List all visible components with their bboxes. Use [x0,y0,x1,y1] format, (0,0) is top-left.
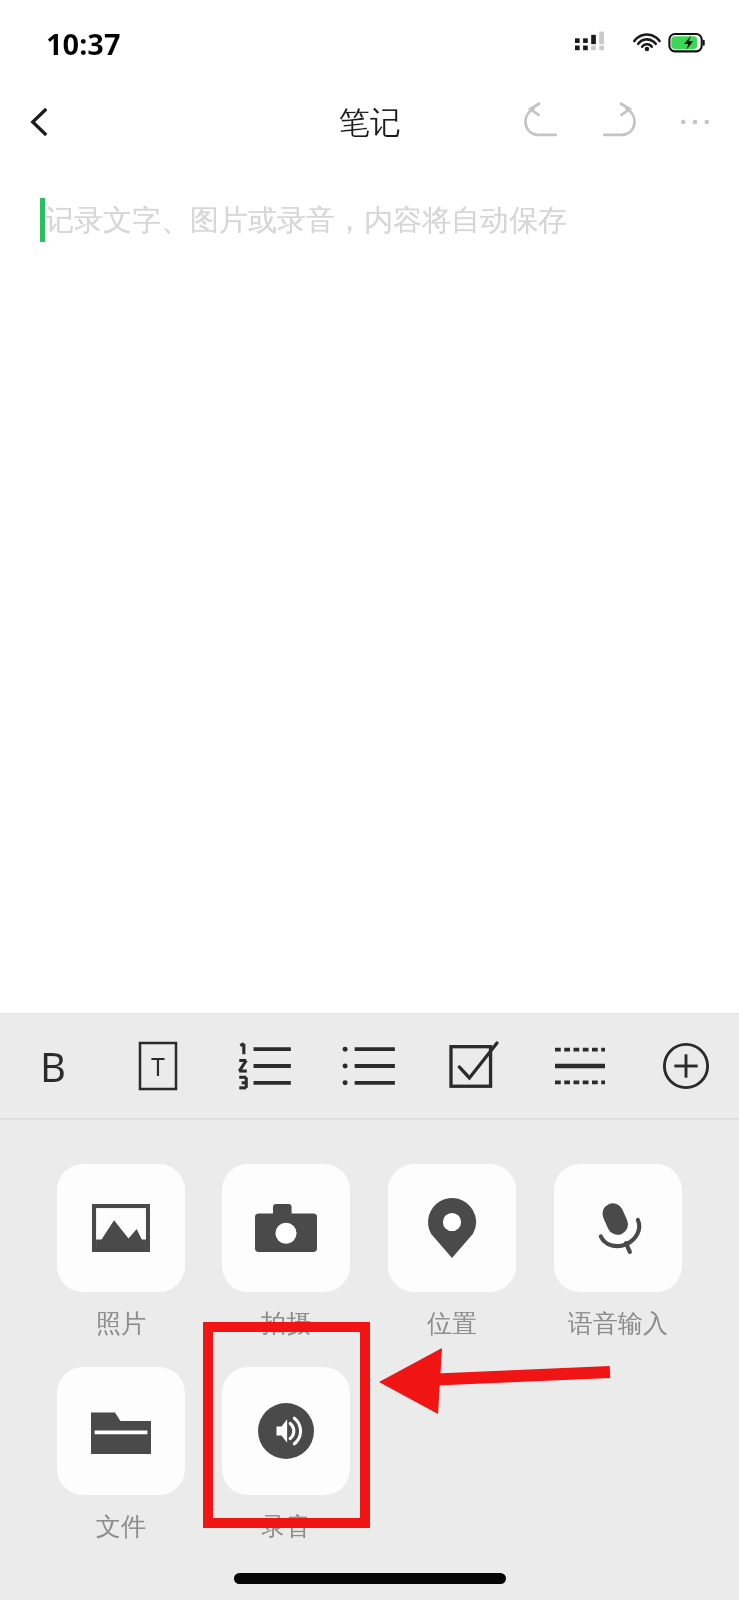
staticText: 10:37 [46,24,121,63]
staticText: 位置 [427,1308,477,1339]
staticText: 录音 [261,1511,311,1542]
button[interactable]: Text style [105,1014,210,1118]
button[interactable]: Back [8,90,72,154]
button[interactable]: Checklist [421,1014,527,1118]
button[interactable]: More options [665,92,725,152]
staticText: T [151,1049,165,1083]
staticText: B [40,1039,66,1093]
button[interactable]: 拍摄 [203,1164,369,1339]
staticText: 文件 [96,1511,146,1542]
staticText: 拍摄 [261,1308,311,1339]
staticText: 笔记 [339,103,401,142]
button[interactable]: 位置 [369,1164,535,1339]
staticText: 照片 [96,1308,146,1339]
button[interactable]: Bulleted list [315,1014,421,1118]
staticText: 记录文字、图片或录音，内容将自动保存 [45,202,567,239]
button[interactable]: 照片 [38,1164,203,1339]
button[interactable]: Add [633,1014,739,1118]
button[interactable]: Bold [0,1014,105,1118]
button[interactable]: 录音 [203,1367,369,1542]
button[interactable]: Divider [527,1014,633,1118]
button[interactable]: Undo [509,92,569,152]
staticText: 语音输入 [568,1308,668,1339]
button[interactable]: Numbered list [210,1014,315,1118]
button[interactable]: 语音输入 [535,1164,701,1339]
button[interactable]: 文件 [38,1367,203,1542]
button[interactable]: Redo [591,92,651,152]
